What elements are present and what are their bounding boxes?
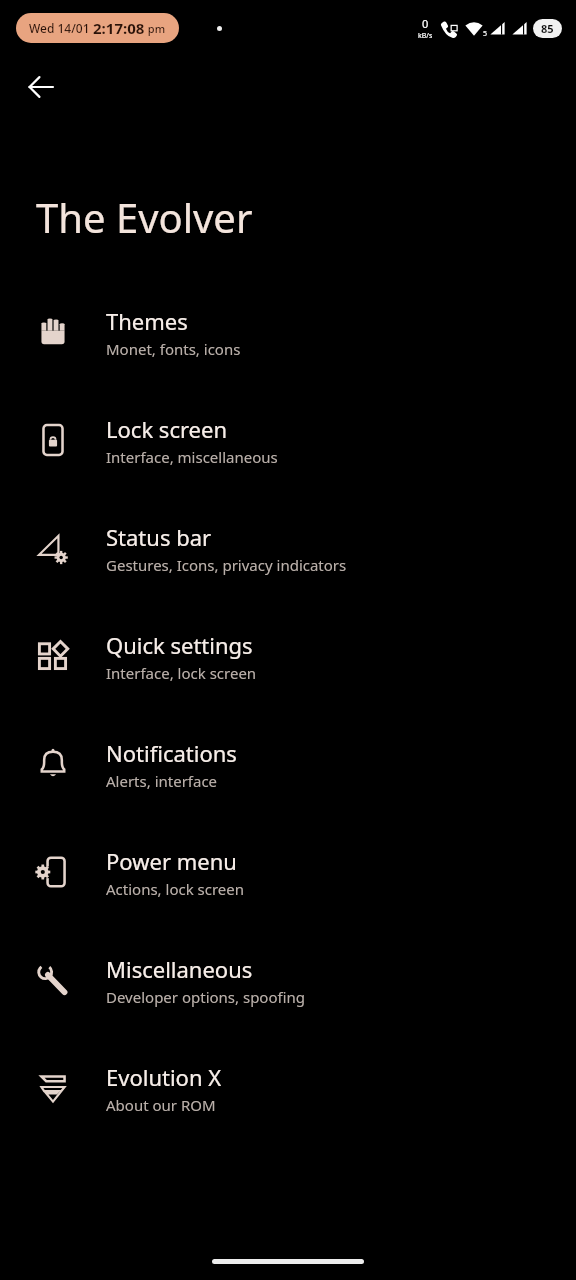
staticText: Themes — [106, 306, 188, 336]
staticText: Wed 14/01 — [29, 20, 93, 36]
staticText: Notifications — [106, 738, 237, 768]
staticText: Developer options, spoofing — [106, 987, 306, 1007]
staticText: 2:17:08 — [93, 18, 145, 38]
staticText: kB/s — [418, 31, 433, 41]
staticText: About our ROM — [106, 1095, 216, 1115]
button[interactable]: Miscellaneous — [0, 926, 576, 1034]
button[interactable]: Notifications — [0, 710, 576, 818]
staticText: Power menu — [106, 846, 237, 876]
staticText: Quick settings — [106, 630, 253, 660]
staticText: Evolution X — [106, 1062, 222, 1092]
button[interactable]: Evolution X — [0, 1034, 576, 1142]
staticText: Actions, lock screen — [106, 879, 245, 899]
staticText: 0 — [422, 16, 429, 31]
staticText: 85 — [541, 21, 554, 36]
staticText: Interface, lock screen — [106, 663, 257, 683]
staticText: Interface, miscellaneous — [106, 447, 278, 467]
button[interactable]: Power menu — [0, 818, 576, 926]
staticText: The Evolver — [36, 190, 253, 244]
staticText: pm — [145, 21, 166, 36]
staticText: Lock screen — [106, 414, 228, 444]
staticText: Miscellaneous — [106, 954, 253, 984]
staticText: Alerts, interface — [106, 771, 218, 791]
staticText: 5 — [483, 29, 488, 39]
staticText: Gestures, Icons, privacy indicators — [106, 555, 347, 575]
button[interactable]: Back — [10, 56, 72, 118]
button[interactable]: Themes — [0, 278, 576, 386]
button[interactable]: Quick settings — [0, 602, 576, 710]
staticText: Status bar — [106, 522, 212, 552]
staticText: Monet, fonts, icons — [106, 339, 241, 359]
button[interactable]: Lock screen — [0, 386, 576, 494]
button[interactable]: Status bar — [0, 494, 576, 602]
